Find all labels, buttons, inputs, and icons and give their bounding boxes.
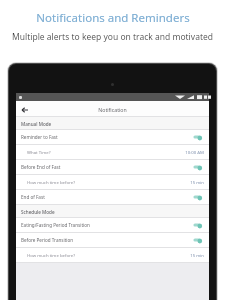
button[interactable]: Eating/Fasting Period Transition <box>16 218 209 232</box>
staticText: End of Fast <box>21 194 193 200</box>
button[interactable]: Toggle <box>193 193 204 202</box>
button[interactable]: Toggle <box>193 133 204 142</box>
staticText: 10:00 AM <box>185 149 204 155</box>
staticText: Before End of Fast <box>21 164 193 170</box>
button[interactable]: End of Fast <box>16 190 209 204</box>
button[interactable]: What Time? <box>16 145 209 159</box>
staticText: Schedule Mode <box>21 209 55 215</box>
button[interactable]: Toggle <box>193 163 204 172</box>
staticText: Multiple alerts to keep you on track and… <box>12 31 213 43</box>
button[interactable]: How much time before? <box>16 175 209 189</box>
staticText: Notification <box>98 106 127 113</box>
staticText: Notifications and Reminders <box>36 10 190 26</box>
staticText: How much time before? <box>27 179 190 185</box>
button[interactable]: Before End of Fast <box>16 160 209 174</box>
staticText: Before Period Transition <box>21 237 193 243</box>
button[interactable]: Reminder to Fast <box>16 130 209 144</box>
button[interactable]: Toggle <box>193 236 204 245</box>
staticText: Manual Mode <box>21 121 52 127</box>
button[interactable]: Back <box>19 104 30 115</box>
staticText: 15 min <box>190 252 204 258</box>
button[interactable]: Toggle <box>193 221 204 230</box>
staticText: What Time? <box>27 149 185 155</box>
staticText: 15 min <box>190 179 204 185</box>
button[interactable]: Schedule Mode <box>16 205 209 218</box>
staticText: Reminder to Fast <box>21 134 193 140</box>
staticText: How much time before? <box>27 252 190 258</box>
button[interactable]: How much time before? <box>16 248 209 262</box>
staticText: Eating/Fasting Period Transition <box>21 222 193 228</box>
button[interactable]: Manual Mode <box>16 117 209 130</box>
button[interactable]: Before Period Transition <box>16 233 209 247</box>
